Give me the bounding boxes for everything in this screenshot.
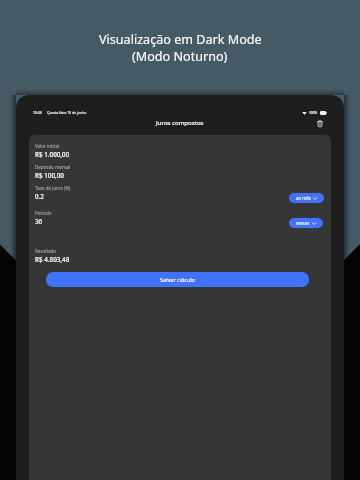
staticText: R$ 1.000,00 bbox=[35, 150, 70, 159]
staticText: Quarta-feira 10 de junho bbox=[47, 110, 87, 115]
staticText: 0.2 bbox=[35, 192, 44, 201]
staticText: Salvar cálculo bbox=[160, 276, 196, 283]
staticText: 36 bbox=[35, 217, 43, 226]
staticText: Juros compostos bbox=[156, 119, 204, 127]
staticText: Resultado bbox=[35, 248, 57, 254]
staticText: Depósito mensal bbox=[35, 164, 71, 170]
staticText: R$ 100,00 bbox=[35, 171, 64, 180]
button[interactable]: ao mês bbox=[289, 193, 324, 203]
button[interactable]: Valor inicial bbox=[35, 143, 331, 159]
staticText: 10:34 bbox=[33, 110, 42, 115]
staticText: ao mês bbox=[296, 195, 311, 201]
button[interactable]: Taxa de juros (%) bbox=[35, 185, 331, 201]
button[interactable]: Salvar cálculo bbox=[46, 272, 309, 287]
button[interactable]: Excluir bbox=[313, 116, 327, 130]
button[interactable]: Resultado bbox=[35, 248, 331, 264]
button[interactable]: Depósito mensal bbox=[35, 164, 331, 180]
button[interactable]: Período bbox=[35, 210, 331, 226]
staticText: meses bbox=[296, 220, 310, 226]
staticText: (Modo Noturno) bbox=[132, 48, 228, 65]
staticText: Período bbox=[35, 210, 52, 216]
staticText: R$ 4.803,48 bbox=[35, 255, 70, 264]
staticText: Taxa de juros (%) bbox=[35, 185, 71, 191]
staticText: Valor inicial bbox=[35, 143, 60, 149]
staticText: Visualização em Dark Mode bbox=[99, 31, 262, 48]
button[interactable]: meses bbox=[289, 218, 323, 228]
staticText: 100% bbox=[309, 111, 318, 115]
